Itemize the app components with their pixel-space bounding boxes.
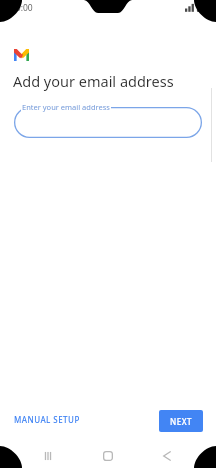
button[interactable]	[14, 107, 202, 138]
staticText: NEXT	[170, 416, 192, 427]
button[interactable]: Home	[96, 449, 120, 463]
staticText: Add your email address	[13, 71, 174, 91]
staticText: MANUAL SETUP	[14, 414, 80, 425]
button[interactable]: Back	[155, 449, 179, 463]
staticText: 10:00	[11, 2, 33, 14]
button[interactable]: MANUAL SETUP	[8, 409, 86, 430]
staticText: Enter your email address	[22, 102, 110, 112]
other: Gmail	[14, 49, 29, 61]
button[interactable]: Recent apps	[36, 449, 60, 463]
button[interactable]: NEXT	[159, 410, 203, 432]
